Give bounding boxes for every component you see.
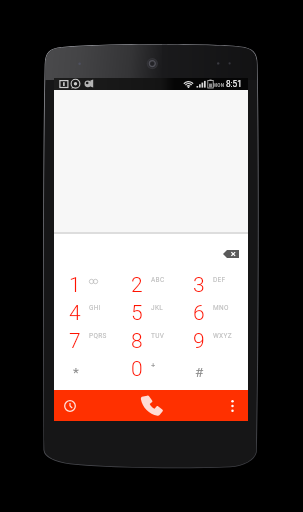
staticText: #: [195, 364, 204, 380]
staticText: DEF: [213, 276, 226, 284]
button[interactable]: 5: [120, 299, 182, 327]
button[interactable]: Call: [85, 390, 217, 421]
staticText: PQRS: [89, 332, 107, 340]
staticText: WXYZ: [213, 332, 232, 340]
staticText: 3: [193, 273, 204, 298]
staticText: GHI: [89, 304, 101, 312]
button[interactable]: 1: [58, 271, 120, 299]
staticText: 8:51: [226, 79, 242, 89]
button[interactable]: 6: [182, 299, 244, 327]
staticText: 8: [131, 329, 142, 354]
button[interactable]: 9: [182, 327, 244, 355]
button[interactable]: 7: [58, 327, 120, 355]
staticText: MON: [213, 83, 225, 88]
button[interactable]: 4: [58, 299, 120, 327]
button[interactable]: 8: [120, 327, 182, 355]
staticText: 0: [131, 357, 142, 382]
staticText: 4: [69, 301, 80, 326]
staticText: 9: [193, 329, 204, 354]
button[interactable]: 0: [120, 355, 182, 383]
button[interactable]: 3: [182, 271, 244, 299]
button[interactable]: Call history: [54, 390, 85, 421]
staticText: *: [73, 364, 79, 380]
staticText: 2: [131, 273, 142, 298]
staticText: 7: [69, 329, 80, 354]
staticText: +: [151, 361, 156, 370]
staticText: 1: [69, 273, 80, 298]
staticText: 6: [193, 301, 204, 326]
staticText: JKL: [151, 304, 164, 312]
staticText: 5: [131, 301, 142, 326]
button[interactable]: Backspace: [220, 243, 242, 265]
button[interactable]: More options: [217, 390, 248, 421]
staticText: TUV: [151, 332, 165, 340]
button[interactable]: #: [182, 355, 244, 383]
staticText: MNO: [213, 304, 229, 312]
staticText: ABC: [151, 276, 165, 284]
button[interactable]: 2: [120, 271, 182, 299]
button[interactable]: *: [58, 355, 120, 383]
